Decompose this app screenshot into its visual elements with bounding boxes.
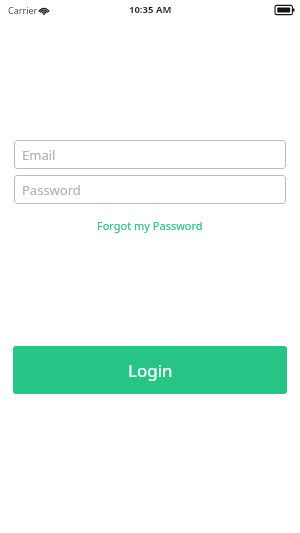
button[interactable]: Email — [14, 140, 286, 169]
button[interactable]: Login — [13, 346, 287, 394]
other: Battery full — [275, 5, 295, 15]
staticText: Email — [22, 146, 56, 164]
button[interactable]: Password — [14, 175, 286, 204]
staticText: Carrier — [8, 4, 38, 16]
staticText: 10:35 AM — [129, 3, 172, 16]
other: Wi-Fi — [38, 5, 50, 15]
staticText: Password — [22, 181, 81, 199]
button[interactable]: Forgot my Password — [91, 216, 209, 235]
staticText: Login — [128, 359, 173, 382]
staticText: Forgot my Password — [97, 218, 203, 233]
